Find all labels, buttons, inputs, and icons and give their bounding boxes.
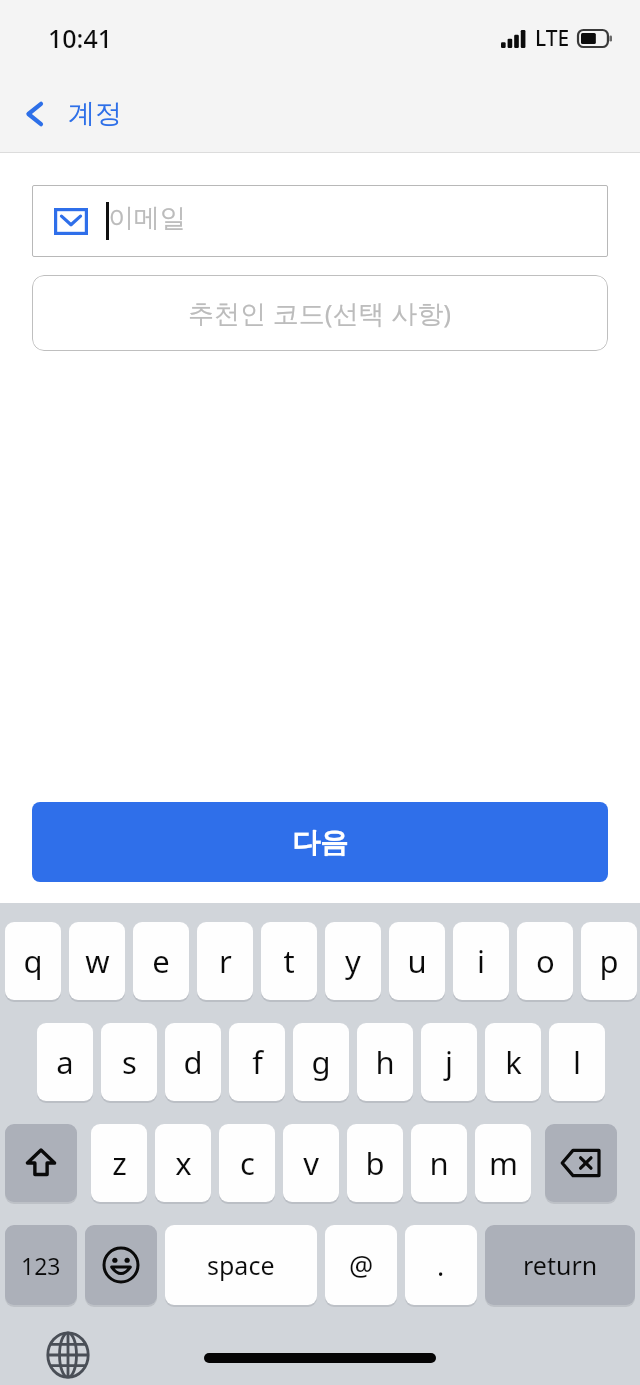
button[interactable]: x	[155, 1124, 211, 1202]
staticText: i	[477, 940, 485, 982]
staticText: 123	[21, 1250, 61, 1281]
button[interactable]: k	[485, 1023, 541, 1101]
other: Back	[20, 99, 50, 129]
button[interactable]: b	[347, 1124, 403, 1202]
staticText: l	[573, 1041, 581, 1083]
button[interactable]: Numbers	[5, 1225, 77, 1305]
staticText: p	[599, 940, 619, 982]
button[interactable]: c	[219, 1124, 275, 1202]
staticText: r	[219, 940, 232, 982]
staticText: d	[183, 1041, 203, 1083]
button[interactable]: Emoji	[85, 1225, 157, 1305]
button[interactable]: j	[421, 1023, 477, 1101]
button[interactable]: y	[325, 922, 381, 1000]
button[interactable]: n	[411, 1124, 467, 1202]
button[interactable]: Space	[165, 1225, 317, 1305]
button[interactable]: o	[517, 922, 573, 1000]
button[interactable]: v	[283, 1124, 339, 1202]
button[interactable]: Shift	[5, 1124, 77, 1202]
staticText: 10:41	[48, 21, 113, 55]
button[interactable]: m	[475, 1124, 531, 1202]
staticText: y	[345, 940, 361, 982]
button[interactable]: Return	[485, 1225, 635, 1305]
button[interactable]: e	[133, 922, 189, 1000]
staticText: c	[240, 1142, 255, 1184]
button[interactable]: p	[581, 922, 637, 1000]
staticText: t	[283, 940, 295, 982]
staticText: q	[23, 940, 43, 982]
button[interactable]: h	[357, 1023, 413, 1101]
staticText: .	[437, 1247, 445, 1284]
staticText: s	[122, 1041, 137, 1083]
button[interactable]: 추천인 코드(선택 사항)	[32, 275, 608, 351]
staticText: b	[365, 1142, 385, 1184]
staticText: j	[445, 1041, 453, 1083]
button[interactable]: a	[37, 1023, 93, 1101]
staticText: 계정	[68, 97, 122, 131]
button[interactable]: At sign	[325, 1225, 397, 1305]
staticText: 추천인 코드(선택 사항)	[188, 295, 452, 331]
staticText: f	[252, 1041, 263, 1083]
button[interactable]: Back	[0, 89, 142, 139]
button[interactable]: Change keyboard language	[42, 1329, 94, 1381]
button[interactable]: f	[229, 1023, 285, 1101]
staticText: e	[152, 940, 170, 982]
staticText: space	[207, 1248, 275, 1282]
button[interactable]: Backspace	[545, 1124, 617, 1202]
staticText: n	[429, 1142, 449, 1184]
button[interactable]: t	[261, 922, 317, 1000]
button[interactable]: w	[69, 922, 125, 1000]
staticText: k	[505, 1041, 522, 1083]
staticText: a	[56, 1041, 74, 1083]
staticText: w	[85, 940, 110, 982]
staticText: 다음	[292, 825, 348, 860]
staticText: 이메일	[108, 202, 186, 235]
button[interactable]: 다음	[32, 802, 608, 882]
button[interactable]: s	[101, 1023, 157, 1101]
button[interactable]: z	[91, 1124, 147, 1202]
button[interactable]: u	[389, 922, 445, 1000]
staticText: o	[536, 940, 555, 982]
staticText: m	[489, 1142, 518, 1184]
staticText: x	[175, 1142, 192, 1184]
button[interactable]: d	[165, 1023, 221, 1101]
staticText: @	[349, 1247, 374, 1284]
staticText: LTE	[535, 24, 570, 53]
staticText: u	[407, 940, 427, 982]
button[interactable]: r	[197, 922, 253, 1000]
staticText: v	[303, 1142, 319, 1184]
staticText: return	[523, 1248, 598, 1282]
button[interactable]: q	[5, 922, 61, 1000]
button[interactable]: 이메일	[32, 185, 608, 257]
staticText: z	[112, 1142, 127, 1184]
button[interactable]: l	[549, 1023, 605, 1101]
staticText: h	[375, 1041, 395, 1083]
staticText: g	[311, 1041, 331, 1083]
button[interactable]: i	[453, 922, 509, 1000]
button[interactable]: Period	[405, 1225, 477, 1305]
button[interactable]: g	[293, 1023, 349, 1101]
